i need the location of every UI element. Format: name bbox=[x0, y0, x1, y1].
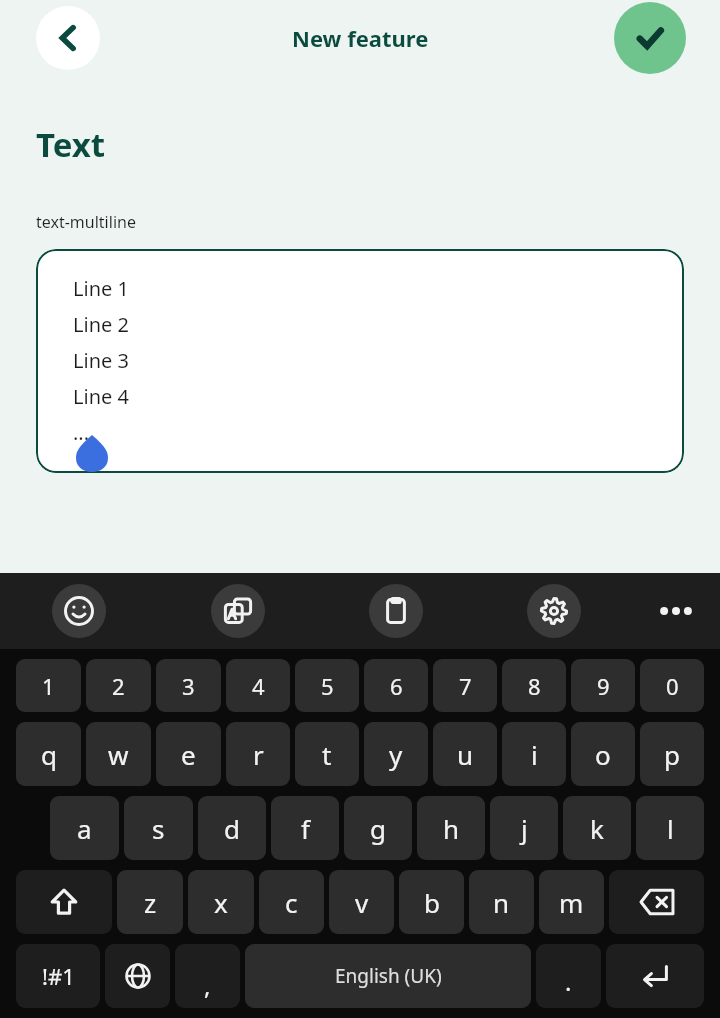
staticText: Line 2 bbox=[73, 311, 129, 338]
staticText: !#1 bbox=[42, 961, 75, 991]
staticText: l bbox=[667, 811, 674, 846]
button[interactable]: y bbox=[364, 722, 428, 786]
staticText: ... bbox=[73, 419, 90, 446]
staticText: 4 bbox=[252, 671, 265, 701]
staticText: g bbox=[370, 811, 386, 846]
staticText: 3 bbox=[182, 671, 195, 701]
button[interactable]: g bbox=[344, 796, 412, 860]
button[interactable]: d bbox=[198, 796, 266, 860]
button[interactable]: m bbox=[539, 870, 604, 934]
staticText: y bbox=[389, 737, 403, 772]
button[interactable]: w bbox=[86, 722, 151, 786]
staticText: a bbox=[77, 811, 92, 846]
staticText: . bbox=[565, 965, 572, 998]
button[interactable]: Confirm bbox=[614, 2, 686, 74]
staticText: 0 bbox=[666, 671, 679, 701]
button[interactable]: More options bbox=[652, 597, 700, 625]
staticText: n bbox=[493, 885, 510, 920]
button[interactable]: Change language bbox=[105, 944, 170, 1008]
staticText: d bbox=[224, 811, 240, 846]
staticText: j bbox=[521, 811, 528, 846]
staticText: 1 bbox=[42, 671, 55, 701]
staticText: u bbox=[457, 737, 474, 772]
button[interactable]: 9 bbox=[571, 659, 635, 712]
staticText: p bbox=[664, 737, 680, 772]
staticText: , bbox=[204, 969, 211, 1002]
staticText: b bbox=[424, 885, 440, 920]
button[interactable]: 3 bbox=[156, 659, 221, 712]
staticText: m bbox=[559, 885, 584, 920]
staticText: r bbox=[253, 737, 264, 772]
button[interactable]: !#1 bbox=[16, 944, 100, 1008]
staticText: Line 4 bbox=[73, 383, 129, 410]
button[interactable]: Clipboard bbox=[369, 584, 423, 638]
staticText: 2 bbox=[112, 671, 125, 701]
button[interactable]: 0 bbox=[640, 659, 704, 712]
button[interactable]: 4 bbox=[226, 659, 290, 712]
staticText: e bbox=[181, 737, 196, 772]
button[interactable]: v bbox=[329, 870, 394, 934]
button[interactable]: o bbox=[571, 722, 635, 786]
button[interactable]: h bbox=[417, 796, 485, 860]
button[interactable]: l bbox=[636, 796, 704, 860]
staticText: s bbox=[152, 811, 165, 846]
staticText: Line 1 bbox=[73, 275, 129, 302]
button[interactable]: j bbox=[490, 796, 558, 860]
staticText: Text bbox=[36, 122, 106, 167]
button[interactable]: i bbox=[502, 722, 566, 786]
button[interactable]: 7 bbox=[433, 659, 497, 712]
button[interactable]: Settings bbox=[527, 584, 581, 638]
button[interactable]: . bbox=[536, 944, 601, 1008]
staticText: z bbox=[144, 885, 157, 920]
button[interactable]: Translate bbox=[211, 584, 265, 638]
staticText: Line 3 bbox=[73, 347, 129, 374]
button[interactable]: Emoji bbox=[52, 584, 106, 638]
staticText: c bbox=[285, 885, 298, 920]
button[interactable]: x bbox=[188, 870, 254, 934]
button[interactable]: Enter bbox=[606, 944, 704, 1008]
button[interactable]: , bbox=[175, 944, 240, 1008]
button[interactable]: q bbox=[16, 722, 81, 786]
button[interactable]: English (UK) bbox=[245, 944, 531, 1008]
button[interactable]: f bbox=[271, 796, 339, 860]
button[interactable]: b bbox=[399, 870, 464, 934]
button[interactable]: e bbox=[156, 722, 221, 786]
staticText: v bbox=[355, 885, 369, 920]
staticText: 5 bbox=[321, 671, 334, 701]
button[interactable]: p bbox=[640, 722, 704, 786]
button[interactable]: z bbox=[117, 870, 183, 934]
button[interactable]: k bbox=[563, 796, 631, 860]
button[interactable]: s bbox=[124, 796, 193, 860]
button[interactable]: t bbox=[295, 722, 359, 786]
staticText: New feature bbox=[292, 23, 429, 53]
button[interactable]: 5 bbox=[295, 659, 359, 712]
button[interactable]: Line 1 bbox=[36, 249, 684, 473]
staticText: h bbox=[443, 811, 460, 846]
button[interactable]: u bbox=[433, 722, 497, 786]
staticText: 9 bbox=[597, 671, 610, 701]
staticText: f bbox=[301, 811, 310, 846]
staticText: 7 bbox=[459, 671, 472, 701]
staticText: 6 bbox=[390, 671, 403, 701]
button[interactable]: 8 bbox=[502, 659, 566, 712]
button[interactable]: c bbox=[259, 870, 324, 934]
staticText: x bbox=[214, 885, 228, 920]
staticText: w bbox=[108, 737, 129, 772]
staticText: 8 bbox=[528, 671, 541, 701]
staticText: i bbox=[531, 737, 538, 772]
button[interactable]: a bbox=[50, 796, 119, 860]
staticText: o bbox=[595, 737, 611, 772]
button[interactable]: 2 bbox=[86, 659, 151, 712]
staticText: k bbox=[590, 811, 604, 846]
button[interactable]: r bbox=[226, 722, 290, 786]
button[interactable]: Shift bbox=[16, 870, 112, 934]
staticText: t bbox=[322, 737, 332, 772]
button[interactable]: 1 bbox=[16, 659, 81, 712]
staticText: q bbox=[41, 737, 57, 772]
button[interactable]: Back bbox=[36, 6, 100, 70]
staticText: English (UK) bbox=[335, 963, 442, 989]
button[interactable]: Backspace bbox=[609, 870, 704, 934]
button[interactable]: n bbox=[469, 870, 534, 934]
staticText: text-multiline bbox=[36, 211, 136, 233]
button[interactable]: 6 bbox=[364, 659, 428, 712]
